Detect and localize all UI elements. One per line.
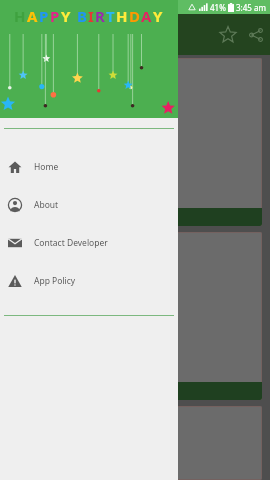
staticText: About: [34, 199, 59, 211]
staticText: होला: [12, 303, 33, 319]
button[interactable]: Home: [0, 148, 178, 186]
staticText: 41%: [210, 2, 226, 13]
staticText: Contact Developer: [34, 237, 108, 249]
staticText: P: [39, 6, 49, 26]
staticText: Y: [153, 6, 163, 26]
staticText: P: [50, 6, 60, 26]
button[interactable]: Share: [242, 21, 270, 49]
button[interactable]: [8, 58, 262, 226]
staticText: 3:45 am: [236, 2, 266, 13]
staticText: B: [77, 6, 87, 26]
button[interactable]: About: [0, 186, 178, 224]
staticText: A: [27, 6, 38, 26]
staticText: Home: [34, 161, 59, 173]
button[interactable]: होला: [8, 232, 262, 400]
button[interactable]: Favorite: [214, 21, 242, 49]
staticText: H: [116, 6, 128, 26]
staticText: T: [106, 6, 115, 26]
staticText: App Policy: [34, 275, 76, 287]
staticText: A: [141, 6, 152, 26]
button[interactable]: [8, 406, 262, 480]
button[interactable]: Contact Developer: [0, 224, 178, 262]
staticText: H: [14, 6, 26, 26]
staticText: R: [95, 6, 105, 26]
staticText: Y: [61, 6, 71, 26]
staticText: D: [129, 6, 140, 26]
staticText: I: [88, 6, 94, 26]
button[interactable]: App Policy: [0, 262, 178, 300]
